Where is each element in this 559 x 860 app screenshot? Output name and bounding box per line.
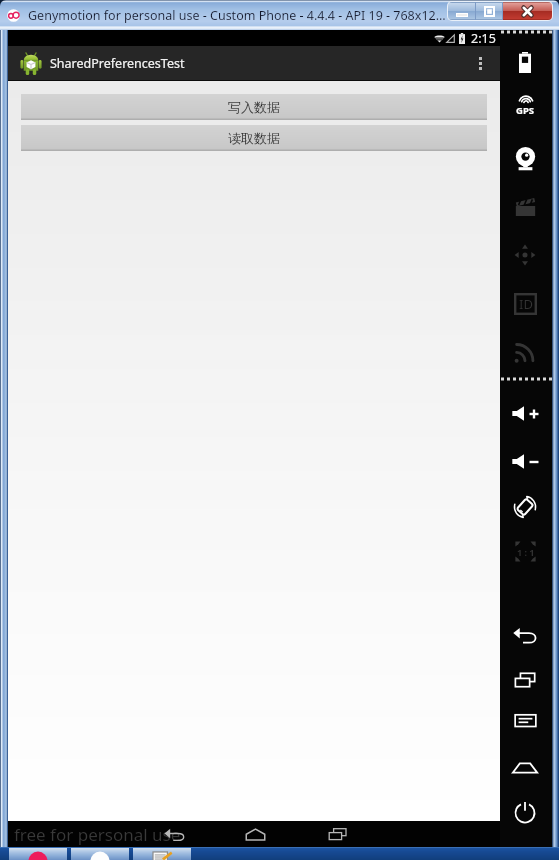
- button[interactable]: Recent apps: [318, 821, 358, 847]
- button[interactable]: Battery: [500, 45, 552, 79]
- staticText: 1 : 1: [517, 546, 535, 558]
- button[interactable]: Video recording: [500, 190, 552, 224]
- button[interactable]: Minimize: [448, 2, 475, 20]
- button[interactable]: Identifiers: [500, 287, 552, 321]
- staticText: ID: [519, 295, 533, 313]
- button[interactable]: Rotate: [500, 490, 552, 524]
- staticText: 2:15: [471, 30, 496, 46]
- button[interactable]: Home: [235, 821, 275, 847]
- button[interactable]: Volume up: [500, 396, 552, 430]
- button[interactable]: Network: [500, 335, 552, 369]
- button[interactable]: Camera: [500, 142, 552, 176]
- staticText: SharedPreferencesTest: [50, 55, 185, 72]
- button[interactable]: Accelerometer: [500, 238, 552, 272]
- button[interactable]: More options: [460, 46, 500, 81]
- button[interactable]: GPS: [500, 88, 552, 122]
- button[interactable]: Recent apps: [500, 663, 552, 697]
- button[interactable]: Volume down: [500, 444, 552, 478]
- button[interactable]: Power: [500, 796, 552, 830]
- staticText: 读取数据: [228, 130, 280, 146]
- button[interactable]: Taskbar item: [133, 848, 191, 860]
- button[interactable]: Menu: [500, 703, 552, 737]
- staticText: Genymotion for personal use - Custom Pho…: [28, 7, 446, 24]
- button[interactable]: 读取数据: [21, 125, 487, 151]
- staticText: 写入数据: [228, 99, 280, 115]
- staticText: GPS: [516, 104, 535, 117]
- button[interactable]: Back: [155, 821, 195, 847]
- button[interactable]: Actual size: [500, 534, 552, 568]
- button[interactable]: Taskbar item: [9, 848, 67, 860]
- button[interactable]: Close: [503, 2, 552, 20]
- button[interactable]: 写入数据: [21, 94, 487, 120]
- button[interactable]: Maximize: [476, 2, 502, 20]
- staticText: free for personal use: [14, 823, 181, 846]
- button[interactable]: Taskbar item: [71, 848, 129, 860]
- button[interactable]: Home: [500, 750, 552, 784]
- button[interactable]: Back: [500, 619, 552, 653]
